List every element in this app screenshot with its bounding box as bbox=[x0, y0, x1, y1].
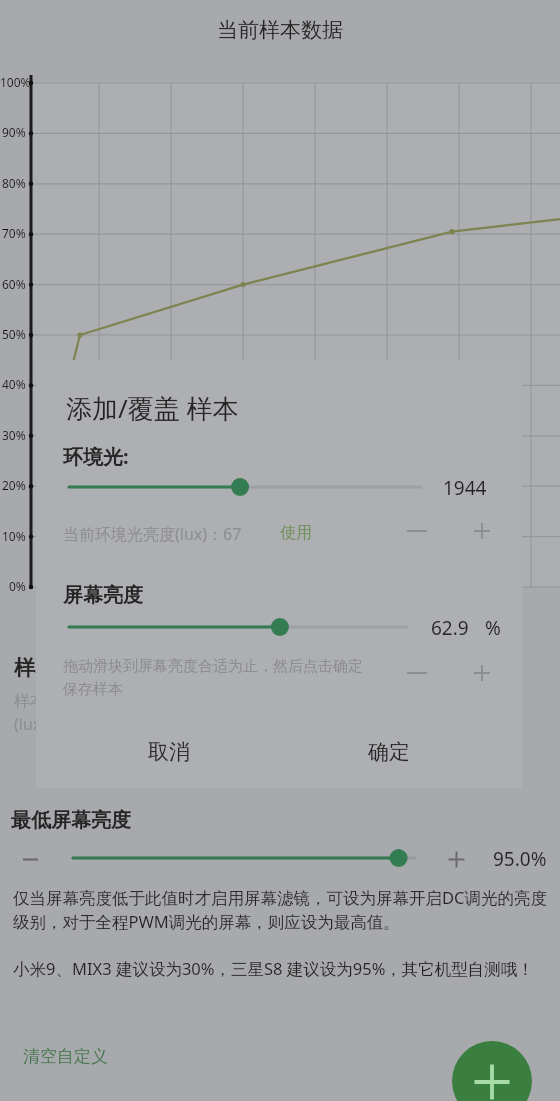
staticText: 添加/覆盖 样本 bbox=[66, 390, 239, 426]
staticText: (lux)与对应屏幕亮度 bbox=[14, 713, 159, 735]
button[interactable]: Decrease bbox=[398, 654, 436, 692]
staticText: % bbox=[485, 615, 501, 641]
staticText: 95.0% bbox=[493, 846, 547, 872]
staticText: 62.9 bbox=[431, 615, 469, 641]
staticText: 样本采集的环境光亮度 bbox=[14, 691, 174, 711]
staticText: 1944 bbox=[443, 475, 487, 501]
button[interactable]: Increase minimum brightness bbox=[438, 841, 475, 878]
staticText: 最低屏幕亮度 bbox=[11, 808, 131, 833]
staticText: 仅当屏幕亮度低于此值时才启用屏幕滤镜，可设为屏幕开启DC调光的亮度 bbox=[13, 886, 547, 909]
button[interactable]: 清空自定义 bbox=[15, 1040, 116, 1073]
staticText: 样本数据 bbox=[14, 655, 98, 681]
button[interactable]: Decrease minimum brightness bbox=[12, 841, 49, 878]
staticText: 20% bbox=[2, 477, 26, 493]
staticText: 30% bbox=[2, 427, 26, 443]
staticText: 70% bbox=[2, 225, 26, 241]
button[interactable]: Decrease bbox=[398, 512, 436, 550]
staticText: 小米9、MIX3 建议设为30%，三星S8 建议设为95%，其它机型自测哦！ bbox=[13, 957, 534, 980]
button[interactable]: Add sample bbox=[452, 1041, 532, 1101]
staticText: 当前样本数据 bbox=[0, 17, 560, 43]
button[interactable]: 确定 bbox=[341, 730, 437, 774]
staticText: 屏幕亮度 bbox=[63, 583, 143, 608]
staticText: 100% bbox=[0, 74, 30, 90]
button[interactable]: Increase bbox=[463, 654, 501, 692]
staticText: 拖动滑块到屏幕亮度合适为止，然后点击确定 bbox=[63, 657, 363, 676]
staticText: 40% bbox=[2, 376, 26, 392]
button[interactable]: Increase bbox=[463, 512, 501, 550]
staticText: 10% bbox=[2, 528, 26, 544]
button[interactable]: 使用 bbox=[274, 517, 318, 549]
staticText: 50% bbox=[2, 326, 26, 342]
staticText: 90% bbox=[2, 124, 26, 140]
staticText: 当前环境光亮度(lux)：67 bbox=[63, 523, 242, 545]
staticText: 清空自定义 bbox=[23, 1046, 108, 1067]
staticText: 确定 bbox=[368, 739, 410, 765]
staticText: 60% bbox=[2, 276, 26, 292]
staticText: 使用 bbox=[280, 523, 312, 543]
staticText: 环境光: bbox=[63, 443, 129, 470]
staticText: 级别，对于全程PWM调光的屏幕，则应设为最高值。 bbox=[13, 910, 400, 933]
staticText: 取消 bbox=[148, 739, 190, 765]
staticText: 保存样本 bbox=[63, 680, 123, 699]
staticText: 0% bbox=[9, 578, 26, 594]
button[interactable]: 取消 bbox=[121, 730, 217, 774]
staticText: 80% bbox=[2, 175, 26, 191]
